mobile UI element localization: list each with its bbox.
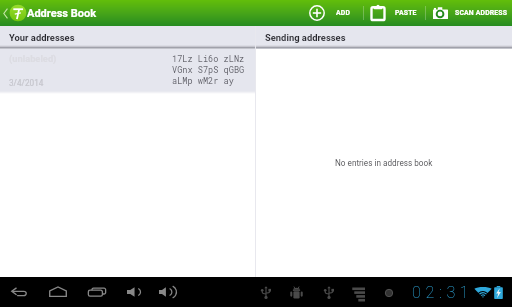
staticText: Address Book bbox=[27, 7, 97, 20]
button[interactable]: Address Book bbox=[0, 0, 97, 26]
staticText: (unlabeled) bbox=[9, 53, 57, 64]
button[interactable]: Volume down bbox=[127, 277, 138, 307]
staticText: No entries in address book bbox=[335, 158, 433, 168]
button[interactable]: Paste bbox=[364, 0, 425, 26]
staticText: Sending addresses bbox=[265, 32, 346, 43]
button[interactable]: Add bbox=[308, 0, 363, 26]
other: Scan address bbox=[433, 7, 448, 19]
other: Add bbox=[309, 5, 325, 21]
button[interactable]: Recents bbox=[88, 277, 106, 307]
button[interactable]: Home bbox=[49, 277, 67, 307]
staticText: aLMp wM2r ay bbox=[172, 75, 234, 86]
staticText: VGnx S7pS qGBG bbox=[172, 64, 245, 75]
staticText: ADD bbox=[336, 9, 351, 17]
button[interactable]: Scan address bbox=[426, 0, 508, 26]
staticText: 02:31 bbox=[412, 283, 474, 302]
button[interactable]: Volume up bbox=[159, 277, 173, 307]
staticText: Your addresses bbox=[9, 32, 75, 43]
other: Paste bbox=[371, 5, 385, 21]
staticText: 17Lz Li6o zLNz bbox=[172, 53, 245, 64]
button[interactable]: (unlabeled) bbox=[0, 49, 255, 94]
staticText: SCAN ADDRESS bbox=[455, 9, 508, 17]
button[interactable]: Back bbox=[10, 277, 28, 307]
staticText: PASTE bbox=[395, 9, 417, 17]
staticText: 3/4/2014 bbox=[9, 78, 44, 88]
